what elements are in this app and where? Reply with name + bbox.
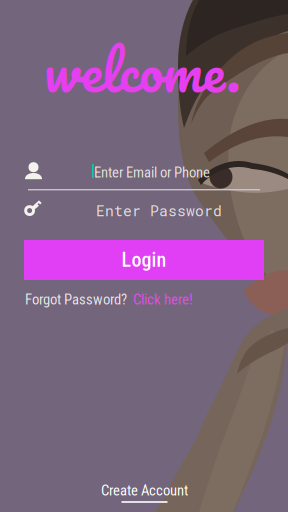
staticText: welcome. <box>44 23 241 117</box>
staticText: Enter Email or Phone <box>94 164 210 181</box>
staticText: Enter Password <box>96 201 222 220</box>
staticText: Forgot Password? <box>25 291 127 308</box>
staticText: Create Account <box>101 482 188 499</box>
button[interactable]: Click here! <box>133 291 193 308</box>
staticText: Click here! <box>133 291 193 308</box>
staticText: Login <box>121 248 166 272</box>
button[interactable]: Login <box>24 240 264 280</box>
button[interactable]: Create Account <box>101 482 188 503</box>
